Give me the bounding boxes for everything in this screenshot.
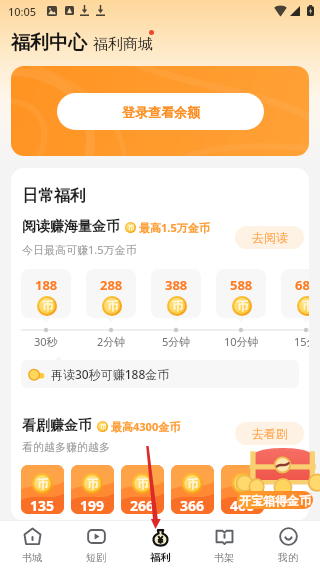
- staticText: 福利: [150, 551, 170, 564]
- staticText: 最高4300金币: [111, 419, 181, 434]
- button[interactable]: 书架: [192, 520, 256, 569]
- staticText: 我的: [278, 551, 298, 564]
- button[interactable]: 开宝箱得金币: [237, 491, 313, 509]
- staticText: 366: [180, 496, 205, 514]
- button[interactable]: 币: [71, 465, 114, 514]
- staticText: 币: [37, 477, 48, 491]
- button[interactable]: 去阅读: [235, 226, 304, 249]
- button[interactable]: 688: [281, 269, 309, 318]
- staticText: 币: [172, 299, 183, 313]
- staticText: 388: [165, 276, 188, 294]
- button[interactable]: 588: [216, 269, 266, 318]
- button[interactable]: 再读30秒可赚188金币: [21, 360, 299, 388]
- staticText: 币: [42, 299, 53, 313]
- staticText: 币: [128, 224, 134, 232]
- button[interactable]: 登录查看余额: [11, 66, 309, 156]
- staticText: 开宝箱得金币: [239, 493, 311, 508]
- staticText: 阅读赚海量金币: [22, 218, 120, 236]
- button[interactable]: 币: [171, 465, 214, 514]
- staticText: 2分钟: [97, 334, 126, 349]
- staticText: 短剧: [86, 551, 106, 564]
- staticText: 去看剧: [252, 426, 288, 441]
- button[interactable]: 去看剧: [235, 422, 304, 445]
- staticText: 币: [137, 477, 148, 491]
- staticText: 199: [80, 496, 105, 514]
- staticText: 30秒: [34, 334, 58, 349]
- staticText: 再读30秒可赚188金币: [51, 366, 170, 382]
- staticText: 466: [230, 496, 255, 514]
- staticText: 288: [100, 276, 123, 294]
- button[interactable]: 币: [21, 465, 64, 514]
- button[interactable]: 书城: [0, 520, 64, 569]
- staticText: 15分: [294, 334, 309, 349]
- button[interactable]: 388: [151, 269, 201, 318]
- staticText: 去阅读: [252, 230, 288, 245]
- staticText: 币: [100, 423, 106, 431]
- staticText: 福利商城: [93, 35, 153, 54]
- staticText: 币: [87, 477, 98, 491]
- staticText: 看的越多赚的越多: [22, 440, 110, 454]
- button[interactable]: 登录查看余额: [57, 93, 264, 130]
- staticText: 188: [35, 276, 58, 294]
- staticText: 看剧赚金币: [22, 417, 92, 435]
- staticText: 币: [107, 299, 118, 313]
- staticText: 登录查看余额: [122, 104, 200, 120]
- staticText: 币: [237, 477, 248, 491]
- button[interactable]: 我的: [256, 520, 320, 569]
- staticText: 书架: [214, 551, 234, 564]
- button[interactable]: 288: [86, 269, 136, 318]
- staticText: 最高1.5万金币: [139, 220, 210, 235]
- staticText: 日常福利: [22, 186, 86, 206]
- staticText: 688: [295, 276, 309, 294]
- staticText: 5分钟: [162, 334, 191, 349]
- staticText: 币: [237, 299, 248, 313]
- staticText: 今日最高可赚1.5万金币: [22, 242, 137, 257]
- staticText: 10分钟: [224, 334, 259, 349]
- staticText: 266: [130, 496, 155, 514]
- button[interactable]: 币: [121, 465, 164, 514]
- staticText: 10:05: [8, 4, 37, 19]
- button[interactable]: 福利: [128, 520, 192, 569]
- button[interactable]: 短剧: [64, 520, 128, 569]
- staticText: 币: [302, 299, 309, 313]
- staticText: 书城: [22, 551, 42, 564]
- button[interactable]: 币: [221, 465, 264, 514]
- staticText: 币: [187, 477, 198, 491]
- button[interactable]: 188: [21, 269, 71, 318]
- staticText: 福利中心: [11, 31, 87, 55]
- staticText: 135: [30, 496, 55, 514]
- staticText: 588: [230, 276, 253, 294]
